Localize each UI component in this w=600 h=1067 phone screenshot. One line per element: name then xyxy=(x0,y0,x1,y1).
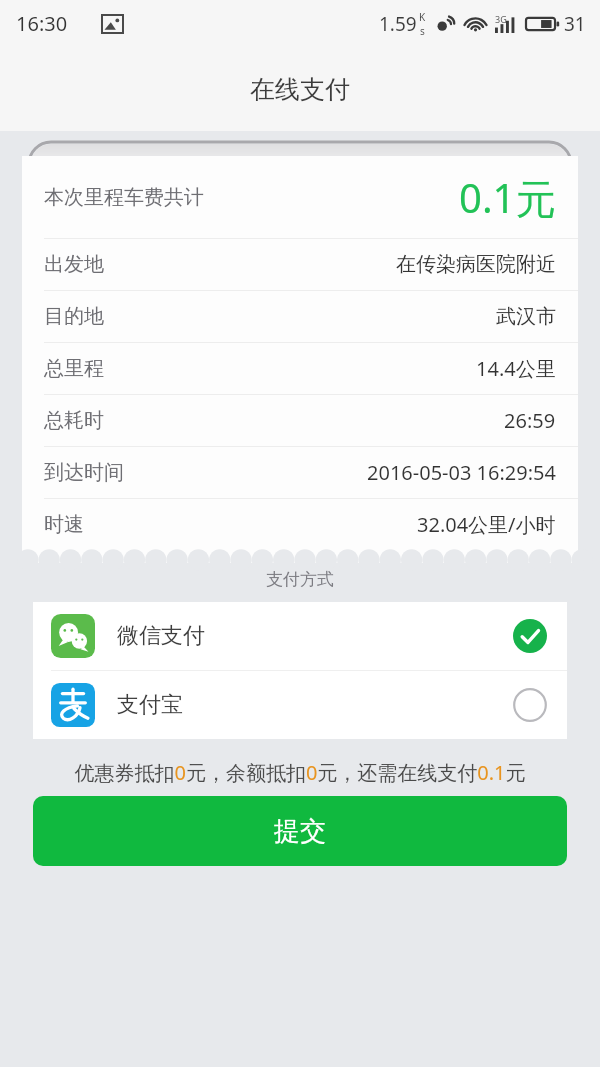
staticText: 本次里程车费共计 xyxy=(44,185,204,210)
staticText: K xyxy=(419,10,426,24)
staticText: 提交 xyxy=(274,815,326,848)
staticText: 微信支付 xyxy=(117,622,205,650)
staticText: 0.1元 xyxy=(459,170,556,225)
staticText: 到达时间 xyxy=(44,460,124,485)
staticText: 优惠券抵扣0元，余额抵扣0元，还需在线支付0.1元 xyxy=(0,759,600,786)
staticText: 支付方式 xyxy=(0,569,600,590)
button[interactable]: 支付宝 xyxy=(33,671,567,739)
staticText: 32.04公里/小时 xyxy=(417,511,556,538)
staticText: 时速 xyxy=(44,512,84,537)
staticText: 26:59 xyxy=(504,407,556,434)
staticText: 2016-05-03 16:29:54 xyxy=(367,459,556,486)
staticText: 出发地 xyxy=(44,252,104,277)
staticText: 14.4公里 xyxy=(476,355,556,382)
staticText: 在线支付 xyxy=(250,74,350,105)
staticText: 31 xyxy=(564,11,586,37)
staticText: 1.59 xyxy=(379,11,417,37)
staticText: 武汉市 xyxy=(496,304,556,329)
staticText: 支付宝 xyxy=(117,691,183,719)
staticText: s xyxy=(420,24,425,38)
staticText: 目的地 xyxy=(44,304,104,329)
button[interactable]: 微信支付 xyxy=(33,602,567,670)
button[interactable]: 提交 xyxy=(33,796,567,866)
staticText: 总耗时 xyxy=(44,408,104,433)
staticText: 16:30 xyxy=(16,10,68,37)
staticText: 在传染病医院附近 xyxy=(396,252,556,277)
staticText: 3G xyxy=(495,13,507,25)
staticText: 总里程 xyxy=(44,356,104,381)
